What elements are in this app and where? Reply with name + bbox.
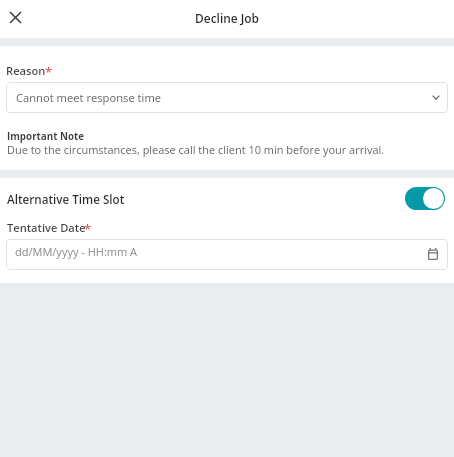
staticText: Cannot meet response time: [16, 90, 162, 105]
staticText: Decline Job: [0, 10, 454, 26]
button[interactable]: Cannot meet response time: [6, 82, 448, 113]
other: Expand reason list: [433, 96, 439, 99]
button[interactable]: Pick date and time: [425, 247, 441, 261]
staticText: Tentative Date: [7, 220, 86, 235]
staticText: *: [84, 220, 92, 238]
staticText: Important Note: [7, 130, 85, 143]
button[interactable]: Alternative Time Slot: [0, 184, 454, 214]
staticText: *: [45, 63, 53, 81]
button[interactable]: Close: [3, 5, 28, 30]
staticText: Alternative Time Slot: [7, 192, 125, 208]
staticText: Reason: [6, 63, 46, 78]
button[interactable]: Alternative time slot, on: [405, 187, 445, 210]
button[interactable]: dd/MM/yyyy - HH:mm A: [6, 239, 448, 270]
staticText: dd/MM/yyyy - HH:mm A: [15, 244, 138, 259]
staticText: Due to the circumstances, please call th…: [7, 142, 385, 157]
